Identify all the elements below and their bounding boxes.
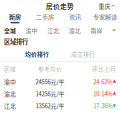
staticText: 渝北 — [4, 89, 16, 98]
staticText: 成交排行 — [71, 50, 95, 58]
button[interactable]: 全城 — [4, 26, 16, 35]
button[interactable]: 江北 — [0, 100, 120, 112]
button[interactable]: 渝中 — [26, 26, 38, 35]
staticText: 环比上月 — [92, 65, 116, 73]
button[interactable]: 资讯 — [60, 14, 90, 23]
staticText: 10.14% — [93, 89, 112, 98]
staticText: 区域 — [4, 65, 16, 73]
button[interactable]: 成交排行 — [60, 50, 106, 58]
staticText: 24.62% — [93, 77, 112, 86]
button[interactable]: 专家解读 — [90, 14, 120, 23]
staticText: 渝北 — [69, 26, 81, 35]
staticText: 渝中 — [4, 77, 16, 86]
staticText: 南岸 — [90, 26, 102, 35]
button[interactable]: 渝中 — [0, 76, 120, 88]
staticText: 全城 — [4, 26, 16, 35]
button[interactable]: 均价排行 — [14, 50, 60, 58]
staticText: 新房 — [9, 12, 21, 21]
staticText: 17.36% — [93, 101, 112, 110]
staticText: 13562元/平 — [35, 101, 64, 110]
button[interactable]: 渝北 — [69, 26, 81, 35]
staticText: 14256元/平 — [35, 89, 64, 98]
staticText: 资讯 — [69, 12, 81, 21]
staticText: 江北 — [47, 26, 59, 35]
staticText: 二手房 — [36, 12, 54, 21]
staticText: 参考均价 — [38, 65, 62, 73]
staticText: 24556元/平 — [35, 77, 64, 86]
button[interactable]: 新房 — [0, 14, 30, 23]
staticText: 均价排行 — [25, 50, 49, 58]
staticText: 重庆 — [99, 2, 111, 10]
staticText: 区域排行 — [4, 37, 28, 46]
staticText: 专家解读 — [93, 12, 117, 21]
button[interactable]: 渝北 — [0, 88, 120, 100]
staticText: 渝中 — [26, 26, 38, 35]
staticText: 江北 — [4, 101, 16, 110]
button[interactable]: 江北 — [47, 26, 59, 35]
staticText: 房价走势 — [46, 1, 74, 11]
button[interactable]: 重庆 — [99, 2, 115, 10]
button[interactable]: 二手房 — [30, 14, 60, 23]
button[interactable]: 南岸 — [90, 26, 102, 35]
